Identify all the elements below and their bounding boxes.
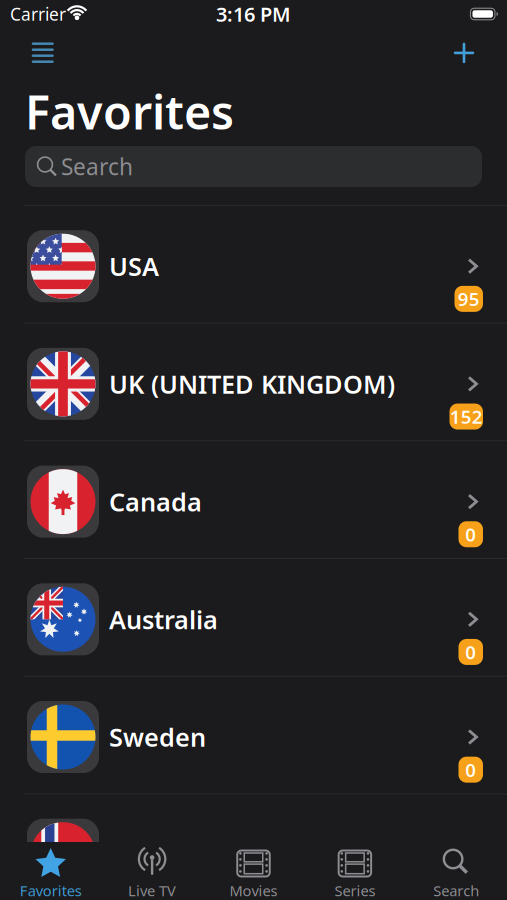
button[interactable]: Favorites	[0, 842, 101, 900]
button[interactable]	[450, 39, 478, 67]
button[interactable]: USA	[0, 207, 507, 325]
button[interactable]: Norway	[0, 796, 507, 900]
staticText: Canada	[109, 485, 202, 518]
button[interactable]: Movies	[203, 842, 304, 900]
staticText: Search	[433, 881, 479, 900]
staticText: Search	[61, 151, 133, 181]
staticText: Sweden	[109, 720, 206, 754]
staticText: 0	[465, 757, 476, 782]
staticText: Favorites	[25, 80, 234, 142]
staticText: 0	[465, 875, 476, 900]
staticText: UK (UNITED KINGDOM)	[109, 367, 395, 401]
staticText: 0	[465, 640, 476, 664]
staticText: Carrier	[10, 2, 66, 25]
staticText: Norway	[109, 838, 206, 871]
staticText: 152	[450, 404, 483, 429]
staticText: 0	[465, 522, 476, 547]
staticText: USA	[109, 249, 159, 283]
staticText: Movies	[229, 881, 277, 900]
button[interactable]: Sweden	[0, 678, 507, 796]
button[interactable]: Search	[406, 842, 507, 900]
button[interactable]: Canada	[0, 443, 507, 560]
staticText: 95	[458, 286, 480, 311]
button[interactable]	[20, 39, 65, 66]
button[interactable]: Australia	[0, 560, 507, 678]
button[interactable]: Search	[25, 146, 482, 187]
staticText: Favorites	[20, 881, 82, 900]
staticText: Series	[334, 881, 375, 900]
button[interactable]: Live TV	[102, 842, 203, 900]
button[interactable]: UK (UNITED KINGDOM)	[0, 325, 507, 443]
button[interactable]: Series	[304, 842, 405, 900]
staticText: Live TV	[128, 881, 176, 900]
staticText: Australia	[109, 602, 218, 636]
staticText: 3:16 PM	[216, 1, 291, 27]
